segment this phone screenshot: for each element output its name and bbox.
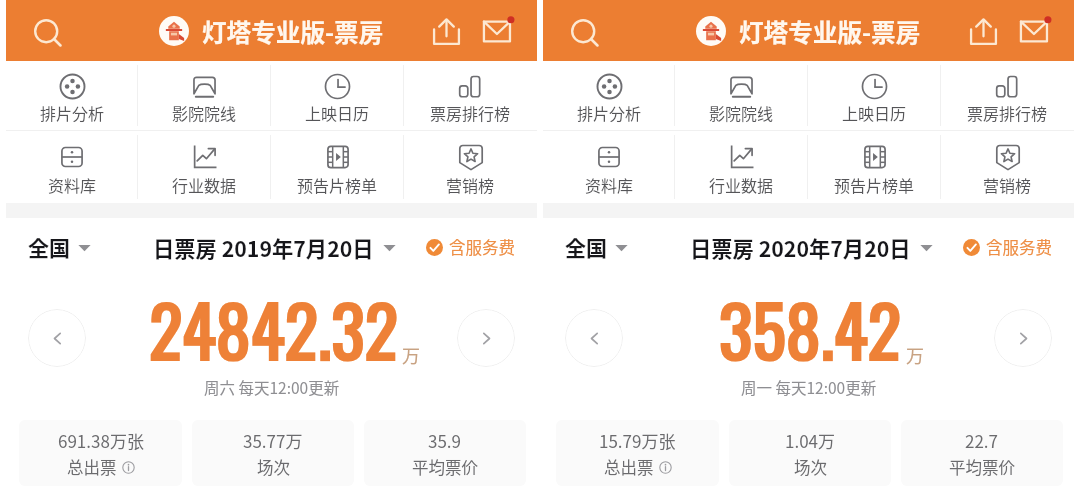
button[interactable]: 营销榜 bbox=[404, 131, 537, 203]
staticText: 万 bbox=[906, 342, 924, 368]
staticText: 灯塔专业版-票房 bbox=[739, 13, 921, 49]
staticText: 358.42 bbox=[719, 276, 902, 377]
staticText: 营销榜 bbox=[446, 173, 495, 196]
button[interactable]: Search bbox=[566, 14, 606, 54]
staticText: 资料库 bbox=[48, 173, 97, 196]
staticText: 排片分析 bbox=[40, 101, 105, 124]
button[interactable]: 22.7 bbox=[901, 420, 1063, 486]
button[interactable]: Previous day bbox=[28, 309, 86, 367]
staticText: 场次 bbox=[794, 455, 827, 479]
staticText: 平均票价 bbox=[412, 455, 478, 479]
button[interactable]: 35.77万 bbox=[192, 420, 354, 486]
button[interactable]: 15.79万张 bbox=[556, 420, 719, 486]
staticText: 1.04万 bbox=[785, 428, 836, 453]
button[interactable]: 上映日历 bbox=[271, 61, 404, 130]
staticText: 全国 bbox=[565, 232, 607, 262]
staticText: 总出票 bbox=[67, 455, 117, 479]
staticText: 周六 每天12:00更新 bbox=[204, 376, 340, 398]
button[interactable]: 上映日历 bbox=[808, 61, 941, 130]
button[interactable]: 1.04万 bbox=[729, 420, 891, 486]
staticText: 22.7 bbox=[965, 428, 999, 453]
staticText: 万 bbox=[402, 342, 420, 368]
button[interactable]: Share bbox=[964, 12, 1002, 50]
button[interactable]: 日票房 2019年7月20日 bbox=[153, 232, 396, 263]
button[interactable]: Share bbox=[427, 12, 465, 50]
staticText: 灯塔专业版-票房 bbox=[202, 13, 384, 49]
staticText: 上映日历 bbox=[842, 101, 907, 124]
staticText: 排片分析 bbox=[577, 101, 642, 124]
staticText: 上映日历 bbox=[305, 101, 370, 124]
button[interactable]: Next day bbox=[994, 309, 1052, 367]
button[interactable]: Previous day bbox=[565, 309, 623, 367]
button[interactable]: 日票房 2020年7月20日 bbox=[690, 232, 933, 263]
button[interactable]: 营销榜 bbox=[941, 131, 1074, 203]
button[interactable]: 含服务费 bbox=[963, 235, 1052, 259]
staticText: 行业数据 bbox=[709, 173, 774, 196]
button[interactable]: 影院院线 bbox=[138, 61, 271, 130]
button[interactable]: 含服务费 bbox=[426, 235, 515, 259]
staticText: 票房排行榜 bbox=[967, 101, 1048, 124]
button[interactable]: Messages bbox=[1016, 12, 1054, 50]
staticText: 日票房 2019年7月20日 bbox=[153, 232, 374, 263]
staticText: 周一 每天12:00更新 bbox=[741, 376, 877, 398]
staticText: 影院院线 bbox=[172, 101, 237, 124]
staticText: 15.79万张 bbox=[599, 428, 676, 453]
button[interactable]: 691.38万张 bbox=[19, 420, 182, 486]
staticText: 24842.32 bbox=[149, 276, 398, 377]
staticText: 预告片榜单 bbox=[834, 173, 915, 196]
button[interactable]: 预告片榜单 bbox=[808, 131, 941, 203]
button[interactable]: 全国 bbox=[28, 232, 91, 262]
button[interactable]: 资料库 bbox=[6, 131, 138, 203]
button[interactable]: 排片分析 bbox=[543, 61, 675, 130]
staticText: 含服务费 bbox=[986, 235, 1052, 259]
staticText: 预告片榜单 bbox=[297, 173, 378, 196]
button[interactable]: 排片分析 bbox=[6, 61, 138, 130]
staticText: 全国 bbox=[28, 232, 70, 262]
button[interactable]: 35.9 bbox=[364, 420, 526, 486]
staticText: 行业数据 bbox=[172, 173, 237, 196]
staticText: 35.9 bbox=[428, 428, 462, 453]
button[interactable]: 行业数据 bbox=[138, 131, 271, 203]
staticText: 35.77万 bbox=[243, 428, 303, 453]
staticText: 691.38万张 bbox=[58, 428, 144, 453]
button[interactable]: 资料库 bbox=[543, 131, 675, 203]
staticText: 资料库 bbox=[585, 173, 634, 196]
staticText: 票房排行榜 bbox=[430, 101, 511, 124]
button[interactable]: 预告片榜单 bbox=[271, 131, 404, 203]
button[interactable]: 全国 bbox=[565, 232, 628, 262]
button[interactable]: 影院院线 bbox=[675, 61, 808, 130]
staticText: 场次 bbox=[257, 455, 290, 479]
staticText: 营销榜 bbox=[983, 173, 1032, 196]
staticText: 平均票价 bbox=[949, 455, 1015, 479]
staticText: 总出票 bbox=[604, 455, 654, 479]
staticText: 影院院线 bbox=[709, 101, 774, 124]
button[interactable]: 票房排行榜 bbox=[404, 61, 537, 130]
button[interactable]: 票房排行榜 bbox=[941, 61, 1074, 130]
button[interactable]: Search bbox=[29, 14, 69, 54]
staticText: 日票房 2020年7月20日 bbox=[690, 232, 911, 263]
button[interactable]: 行业数据 bbox=[675, 131, 808, 203]
button[interactable]: Next day bbox=[457, 309, 515, 367]
staticText: 含服务费 bbox=[449, 235, 515, 259]
button[interactable]: Messages bbox=[479, 12, 517, 50]
